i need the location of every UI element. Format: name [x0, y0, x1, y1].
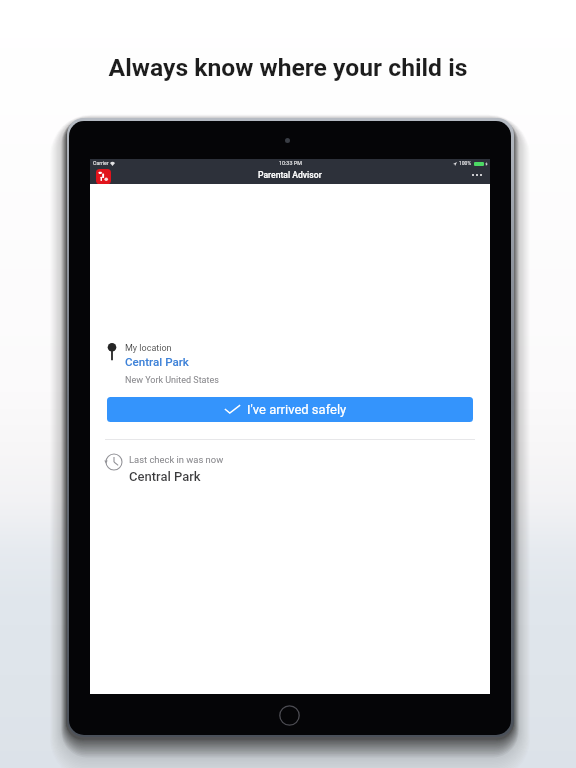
staticText: 100% [459, 160, 472, 166]
staticText: Parental Advisor [258, 170, 322, 180]
staticText: I've arrived safely [247, 402, 347, 417]
button[interactable]: I've arrived safely [107, 397, 473, 422]
staticText: Always know where your child is [0, 53, 576, 82]
staticText: 10:33 PM [279, 160, 302, 166]
staticText: My location [125, 343, 172, 354]
staticText: Central Park [125, 355, 189, 369]
button[interactable]: More options [472, 174, 482, 176]
staticText: Central Park [129, 469, 201, 484]
button[interactable]: Parental Advisor app icon [96, 169, 111, 184]
staticText: New York United States [125, 375, 219, 386]
staticText: Carrier [93, 160, 109, 166]
staticText: Last check in was now [129, 454, 224, 465]
